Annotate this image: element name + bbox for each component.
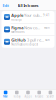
button[interactable]: Apple	[1, 11, 54, 23]
staticText: Arcade	[35, 95, 44, 98]
staticText: Your subscription renews	[24, 13, 42, 18]
button[interactable]: Arcade	[34, 89, 45, 99]
button[interactable]: GitHub	[1, 36, 54, 48]
staticText: Figma	[11, 25, 23, 30]
staticText: Apple	[11, 13, 23, 18]
button[interactable]: Figma	[1, 23, 54, 35]
staticText: All Inboxes	[17, 3, 38, 8]
staticText: Apps	[24, 95, 31, 98]
staticText: Mentions	[11, 30, 24, 34]
staticText: Mail	[3, 95, 8, 98]
staticText: Notifications digest	[11, 43, 38, 46]
button[interactable]: Today	[11, 89, 22, 99]
staticText: Receipt	[11, 18, 22, 21]
staticText: GitHub	[11, 37, 26, 43]
button[interactable]: Mail	[0, 89, 11, 99]
staticText: 9:41	[43, 13, 50, 17]
staticText: Mon	[44, 26, 50, 29]
button[interactable]: Apps	[22, 89, 34, 99]
staticText: Today	[13, 95, 20, 98]
staticText: New comment on Draft	[24, 25, 43, 30]
button[interactable]: Edit	[0, 0, 11, 10]
staticText: Search	[46, 95, 54, 98]
button[interactable]: Search	[45, 89, 56, 99]
staticText: 3 pull requests merged	[27, 37, 44, 43]
staticText: Edit	[2, 3, 8, 8]
staticText: Sun	[45, 38, 50, 42]
